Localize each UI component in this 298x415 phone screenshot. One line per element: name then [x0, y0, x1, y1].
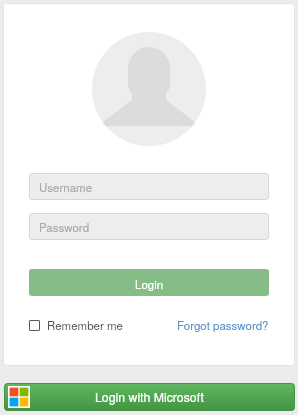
button[interactable]: Login — [29, 269, 269, 296]
staticText: Login — [135, 276, 164, 292]
button[interactable]: Login with Microsoft — [4, 383, 295, 411]
staticText: Login with Microsoft — [95, 388, 204, 406]
staticText: Password — [39, 219, 90, 235]
staticText: Username — [39, 179, 93, 195]
button[interactable]: Username — [29, 173, 269, 200]
staticText: Remember me — [47, 317, 123, 333]
button[interactable]: Remember me — [29, 317, 123, 333]
button[interactable]: Password — [29, 213, 269, 240]
button[interactable]: Forgot password? — [177, 317, 269, 333]
